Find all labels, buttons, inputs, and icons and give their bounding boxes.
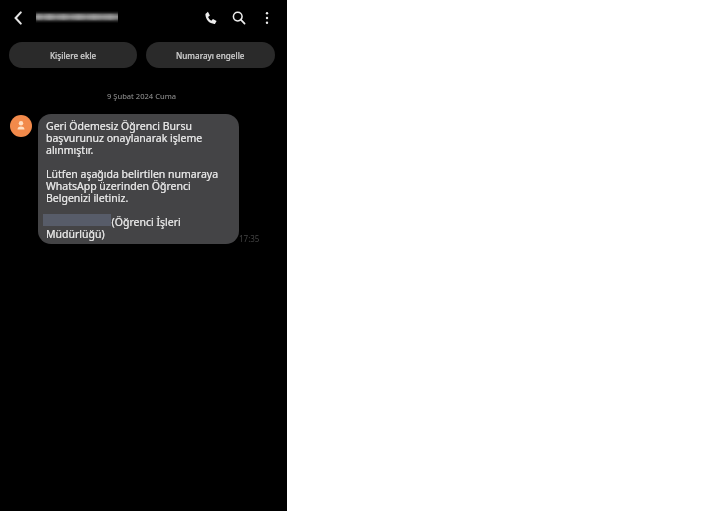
button[interactable]: Kişilere ekle	[9, 42, 137, 68]
button[interactable]: Numarayı engelle	[146, 42, 275, 68]
button[interactable]: Back	[5, 5, 31, 31]
staticText: 9 Şubat 2024 Cuma	[107, 91, 177, 101]
staticText: 17:35	[239, 233, 260, 244]
staticText: Kişilere ekle	[50, 50, 97, 61]
staticText: Numarayı engelle	[176, 50, 245, 61]
button[interactable]: Call	[197, 4, 224, 31]
button[interactable]: Contact avatar	[10, 115, 32, 137]
button[interactable]: Geri Ödemesiz Öğrenci Bursu başvurunuz o…	[38, 114, 239, 244]
button[interactable]: Search	[225, 4, 252, 31]
staticText: Geri Ödemesiz Öğrenci Bursu başvurunuz o…	[46, 119, 219, 241]
button[interactable]: More options	[253, 4, 280, 31]
button[interactable]: Contact name	[35, 11, 119, 23]
